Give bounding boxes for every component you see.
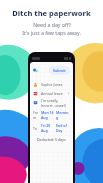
staticText: Fri 20 Aug (41, 123, 56, 133)
staticText: It's just a few taps away. (22, 29, 81, 36)
button[interactable]: I'm totally, honest, unwell (33, 98, 70, 107)
button[interactable]: From (33, 110, 70, 120)
staticText: From (33, 110, 41, 120)
staticText: End of Day (56, 123, 70, 133)
staticText: I'm totally, honest, unwell (41, 98, 70, 107)
button[interactable]: Submit (49, 66, 70, 75)
staticText: Deducted: 5 days (37, 137, 66, 142)
staticText: Submit (53, 68, 66, 73)
staticText: Mon 14 Aug (41, 110, 56, 120)
staticText: Morning (56, 110, 70, 120)
staticText: Sophie Jones (41, 82, 63, 87)
staticText: Annual leave (41, 91, 63, 96)
button[interactable]: To (33, 123, 70, 133)
staticText: Ditch the paperwork (12, 8, 91, 18)
other: App logo (33, 68, 38, 73)
button[interactable]: Sophie Jones (33, 80, 70, 89)
button[interactable]: Annual leave (33, 89, 70, 98)
staticText: To (33, 126, 37, 131)
staticText: Need a day off? (33, 21, 71, 28)
